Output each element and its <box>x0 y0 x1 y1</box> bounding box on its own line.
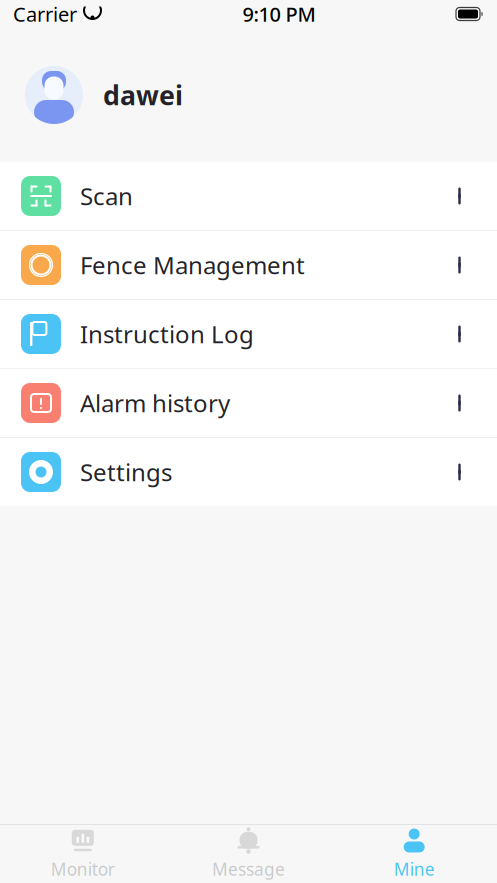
staticText: 9:10 PM <box>242 1 315 27</box>
button[interactable]: Mine <box>331 825 497 883</box>
staticText: Instruction Log <box>80 318 254 350</box>
staticText: Alarm history <box>80 387 230 419</box>
button[interactable]: Fence Management <box>0 231 497 299</box>
button[interactable]: Alarm history <box>0 369 497 437</box>
staticText: Scan <box>80 180 133 212</box>
staticText: Monitor <box>51 857 115 880</box>
button[interactable]: Instruction Log <box>0 300 497 368</box>
staticText: Mine <box>394 857 435 880</box>
button[interactable]: Message <box>166 825 331 883</box>
button[interactable]: Settings <box>0 438 497 506</box>
staticText: Fence Management <box>80 249 305 281</box>
staticText: Message <box>212 857 285 880</box>
button[interactable]: Monitor <box>0 825 166 883</box>
staticText: Carrier <box>13 1 77 27</box>
staticText: dawei <box>103 77 183 113</box>
staticText: Settings <box>80 456 172 488</box>
button[interactable]: Scan <box>0 162 497 230</box>
